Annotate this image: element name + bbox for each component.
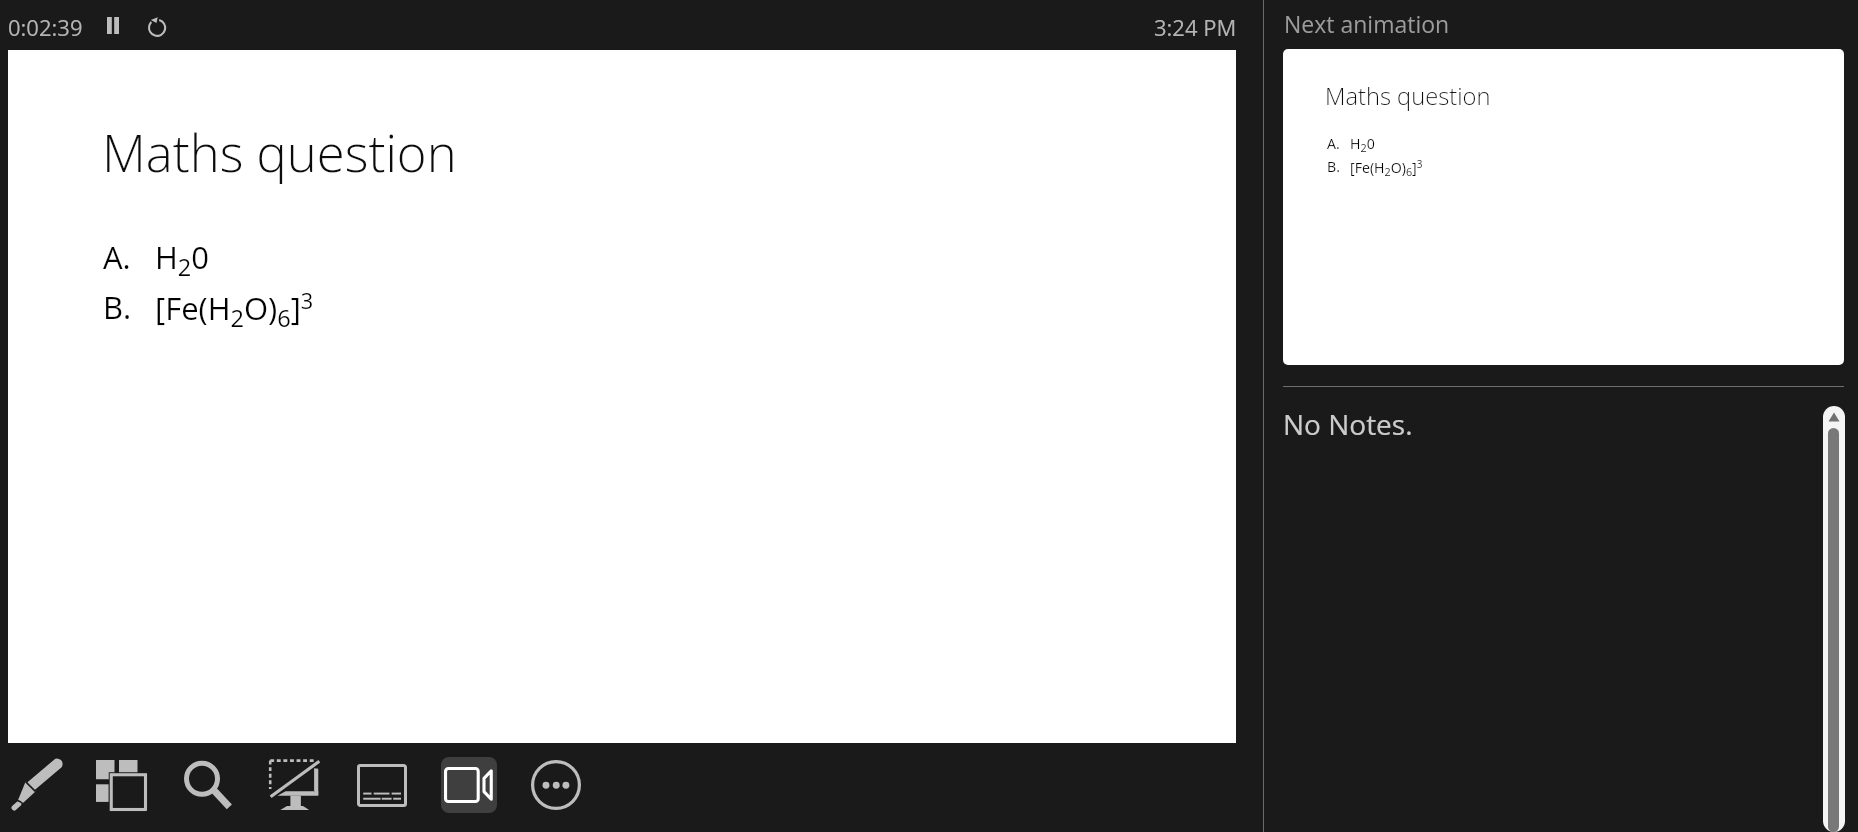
button[interactable]: Subtitles [349, 751, 415, 819]
staticText: 3:24 PM [1154, 12, 1237, 42]
button[interactable]: Pause timer [97, 9, 129, 41]
button[interactable]: Slide grid [88, 751, 154, 819]
button[interactable]: Restart timer [141, 9, 173, 41]
staticText: A. [103, 236, 131, 278]
staticText: H20 [1350, 134, 1375, 155]
staticText: No Notes. [1283, 405, 1413, 443]
staticText: H20 [155, 236, 210, 283]
staticText: Next animation [1284, 8, 1450, 39]
button[interactable]: Camera [436, 751, 502, 819]
button[interactable]: Pen [3, 751, 69, 819]
button[interactable]: Scroll notes [1823, 406, 1845, 832]
staticText: [Fe(H2O)6]3 [1350, 157, 1423, 179]
staticText: Maths question [1325, 80, 1491, 112]
button[interactable]: Black screen [262, 751, 328, 819]
staticText: [Fe(H2O)6]3 [155, 286, 314, 334]
button[interactable]: More options [523, 751, 589, 819]
staticText: B. [103, 286, 132, 328]
staticText: A. [1327, 134, 1340, 153]
button[interactable]: Search [175, 751, 241, 819]
staticText: 0:02:39 [8, 12, 83, 42]
staticText: Maths question [102, 118, 457, 187]
staticText: B. [1327, 157, 1340, 176]
